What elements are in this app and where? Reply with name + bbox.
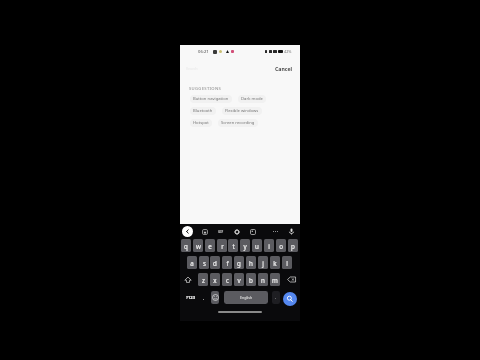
button[interactable]: m — [270, 273, 280, 286]
staticText: v — [237, 276, 241, 284]
button[interactable]: Emoji — [211, 291, 219, 304]
button[interactable]: d — [210, 256, 220, 269]
button[interactable]: f — [222, 256, 232, 269]
button[interactable]: Search — [283, 292, 297, 306]
staticText: , — [203, 295, 205, 300]
staticText: f — [226, 259, 229, 267]
staticText: n — [261, 276, 265, 284]
staticText: r — [221, 242, 224, 250]
button[interactable]: w — [193, 239, 203, 252]
button[interactable]: GIF — [216, 227, 225, 236]
button[interactable]: v — [234, 273, 244, 286]
button[interactable]: c — [222, 273, 232, 286]
staticText: l — [286, 259, 288, 267]
button[interactable]: Backspace — [285, 273, 297, 286]
staticText: Hotspot — [193, 120, 209, 126]
staticText: o — [279, 242, 283, 250]
staticText: c — [226, 276, 229, 284]
button[interactable]: English — [224, 291, 268, 304]
button[interactable]: l — [282, 256, 292, 269]
button[interactable]: u — [252, 239, 262, 252]
staticText: w — [196, 242, 201, 250]
button[interactable]: z — [198, 273, 208, 286]
staticText: English — [240, 295, 253, 300]
button[interactable]: Settings — [232, 227, 241, 236]
button[interactable]: Hotspot — [190, 119, 212, 127]
button[interactable]: Shift — [182, 273, 194, 286]
button[interactable]: e — [205, 239, 215, 252]
button[interactable]: Clipboard — [200, 227, 209, 236]
staticText: a — [190, 259, 194, 267]
staticText: 06:21 — [198, 49, 209, 55]
staticText: GIF — [218, 230, 224, 234]
staticText: Search — [186, 66, 198, 71]
button[interactable]: Voice input — [287, 227, 296, 236]
button[interactable]: q — [181, 239, 191, 252]
button[interactable]: a — [187, 256, 197, 269]
button[interactable]: More options — [271, 227, 280, 236]
staticText: t — [232, 242, 235, 250]
staticText: b — [249, 276, 253, 284]
button[interactable]: t — [228, 239, 238, 252]
staticText: z — [202, 276, 205, 284]
button[interactable]: Flexible windows — [222, 107, 262, 115]
staticText: Screen recording — [221, 120, 255, 126]
staticText: g — [237, 259, 241, 267]
button[interactable]: s — [199, 256, 209, 269]
staticText: Flexible windows — [225, 108, 259, 114]
staticText: 42% — [284, 49, 292, 54]
staticText: . — [275, 295, 277, 301]
button[interactable]: y — [240, 239, 250, 252]
button[interactable]: Cancel — [274, 64, 294, 73]
button[interactable]: Button navigation — [190, 95, 232, 103]
staticText: i — [268, 242, 270, 250]
button[interactable]: Close keyboard toolbar — [182, 226, 193, 237]
button[interactable]: g — [234, 256, 244, 269]
staticText: Dark mode — [241, 96, 263, 102]
button[interactable]: Bluetooth — [190, 107, 216, 115]
staticText: y — [243, 242, 247, 250]
staticText: p — [291, 242, 295, 250]
staticText: j — [262, 259, 264, 267]
button[interactable]: ?123 — [184, 291, 196, 304]
staticText: s — [203, 259, 206, 267]
staticText: ?123 — [186, 295, 195, 301]
button[interactable]: h — [246, 256, 256, 269]
staticText: x — [213, 276, 217, 284]
button[interactable]: Stickers — [248, 227, 257, 236]
staticText: e — [208, 242, 212, 250]
staticText: Cancel — [275, 65, 293, 72]
staticText: h — [249, 259, 253, 267]
staticText: q — [184, 242, 188, 250]
button[interactable]: i — [264, 239, 274, 252]
button[interactable]: Screen recording — [218, 119, 258, 127]
button[interactable]: n — [258, 273, 268, 286]
button[interactable]: k — [270, 256, 280, 269]
button[interactable]: Period — [272, 291, 280, 304]
staticText: Bluetooth — [193, 108, 213, 114]
button[interactable]: x — [210, 273, 220, 286]
button[interactable]: j — [258, 256, 268, 269]
staticText: m — [272, 276, 278, 284]
staticText: k — [273, 259, 277, 267]
button[interactable]: p — [288, 239, 298, 252]
button[interactable]: Comma — [200, 291, 208, 304]
staticText: u — [255, 242, 259, 250]
button[interactable]: Dark mode — [238, 95, 266, 103]
staticText: d — [213, 259, 217, 267]
staticText: Button navigation — [193, 96, 229, 102]
button[interactable]: r — [217, 239, 227, 252]
button[interactable]: b — [246, 273, 256, 286]
staticText: SUGGESTIONS — [189, 86, 222, 92]
button[interactable]: o — [276, 239, 286, 252]
